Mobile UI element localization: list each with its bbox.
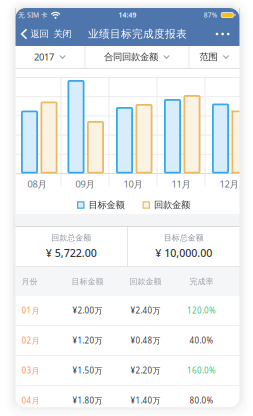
staticText: 月份 (21, 277, 37, 286)
button[interactable] (214, 30, 234, 38)
staticText: 无 SIM 卡 (18, 11, 48, 19)
staticText: 合同回款金额 (104, 51, 158, 63)
button[interactable]: 范围 (189, 46, 239, 68)
staticText: 11月 (171, 178, 190, 190)
staticText: 2017 (34, 51, 54, 63)
staticText: 120.0% (187, 305, 216, 316)
staticText: 04月 (21, 395, 39, 406)
button[interactable]: 03月 (15, 356, 239, 386)
staticText: 03月 (21, 365, 39, 376)
staticText: 08月 (27, 178, 46, 190)
staticText: 回款总金额 (51, 233, 91, 243)
button[interactable]: 02月 (15, 326, 239, 356)
staticText: ¥1.80万 (72, 395, 102, 406)
staticText: 回款金额 (129, 277, 161, 286)
button[interactable]: 04月 (15, 386, 239, 407)
staticText: ¥0.48万 (130, 335, 160, 346)
staticText: 范围 (199, 51, 217, 63)
staticText: 09月 (75, 178, 94, 190)
staticText: 80.0% (189, 395, 213, 406)
button[interactable]: 2017 (15, 46, 84, 68)
staticText: 返回 (30, 28, 48, 40)
staticText: 目标金额 (71, 277, 103, 286)
staticText: 关闭 (53, 28, 71, 40)
staticText: 160.0% (187, 365, 216, 376)
staticText: ¥ 5,722.00 (46, 246, 97, 260)
staticText: ¥2.20万 (130, 365, 160, 376)
button[interactable]: 关闭 (53, 28, 71, 40)
staticText: ¥1.50万 (72, 365, 102, 376)
staticText: 87% (204, 11, 218, 19)
staticText: 业绩目标完成度报表 (88, 27, 187, 40)
staticText: 14:49 (118, 11, 136, 19)
staticText: ¥ 10,000.00 (155, 246, 212, 260)
button[interactable]: 返回 (20, 28, 48, 40)
staticText: 回款金额 (154, 199, 190, 211)
button[interactable]: 合同回款金额 (85, 46, 188, 68)
staticText: 01月 (21, 305, 39, 316)
staticText: ¥1.20万 (72, 335, 102, 346)
staticText: 目标金额 (88, 199, 124, 211)
staticText: 02月 (21, 335, 39, 346)
button[interactable]: 业绩目标完成度报表 (88, 27, 187, 40)
button[interactable]: 01月 (15, 296, 239, 326)
staticText: 40.0% (189, 335, 213, 346)
staticText: ¥1.40万 (130, 395, 160, 406)
staticText: 完成率 (189, 277, 213, 286)
staticText: ¥2.00万 (72, 305, 102, 316)
staticText: 12月 (219, 178, 238, 190)
staticText: 目标总金额 (164, 233, 204, 243)
staticText: 10月 (123, 178, 142, 190)
staticText: ¥2.40万 (130, 305, 160, 316)
